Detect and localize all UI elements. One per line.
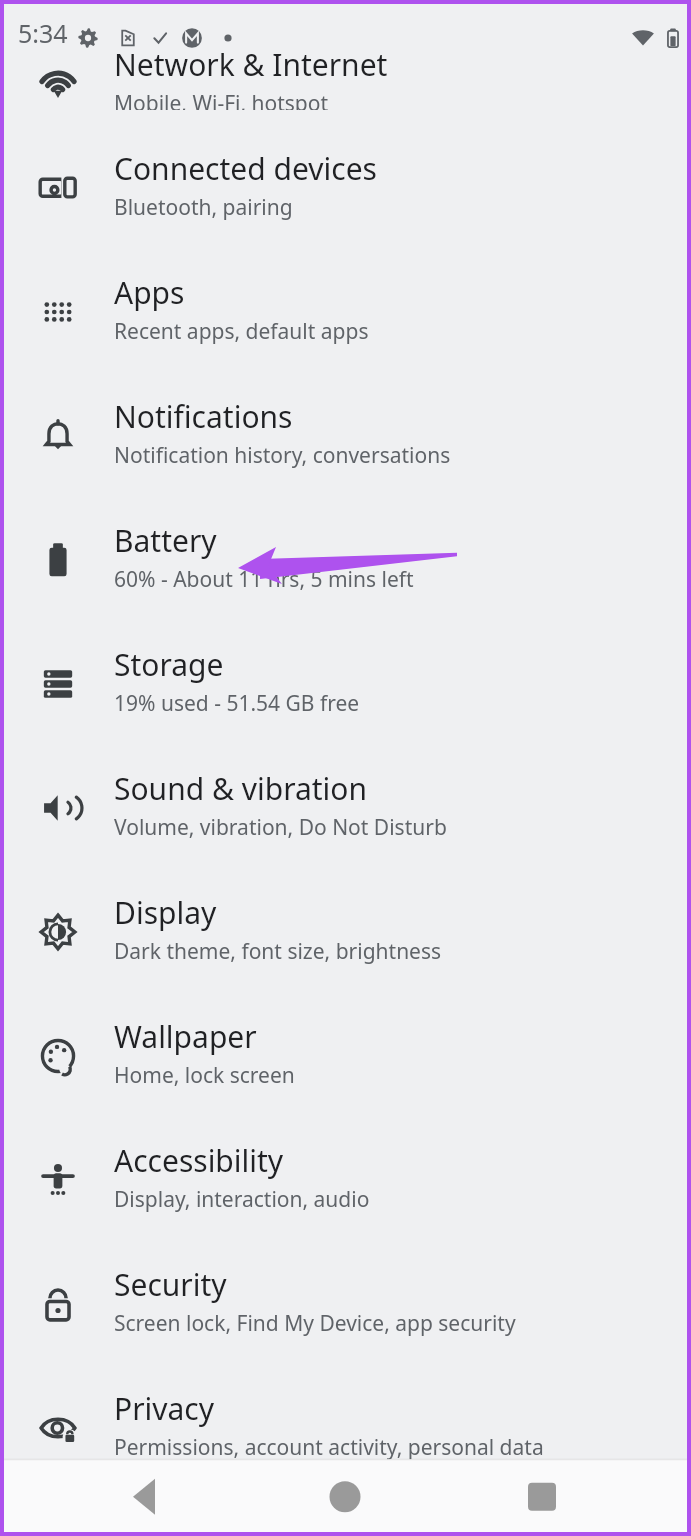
button[interactable]: Notifications [0, 374, 691, 498]
staticText: Notification history, conversations [114, 441, 451, 470]
staticText: Storage [114, 644, 224, 685]
staticText: Connected devices [114, 148, 377, 189]
staticText: Security [114, 1264, 227, 1305]
staticText: Battery [114, 520, 217, 561]
staticText: Bluetooth, pairing [114, 193, 293, 222]
staticText: Home, lock screen [114, 1061, 295, 1090]
staticText: Display [114, 892, 217, 933]
button[interactable]: Home [310, 1459, 380, 1536]
staticText: Sound & vibration [114, 768, 368, 809]
staticText: 60% - About 11 hrs, 5 mins left [114, 565, 414, 594]
staticText: Apps [114, 272, 185, 313]
staticText: Privacy [114, 1388, 215, 1429]
staticText: 19% used - 51.54 GB free [114, 689, 360, 718]
staticText: Recent apps, default apps [114, 317, 369, 346]
button[interactable]: Storage [0, 622, 691, 746]
button[interactable]: Accessibility [0, 1118, 691, 1242]
staticText: Permissions, account activity, personal … [114, 1433, 544, 1462]
staticText: Screen lock, Find My Device, app securit… [114, 1309, 516, 1338]
button[interactable]: Battery [0, 498, 691, 622]
staticText: Network & Internet [114, 44, 388, 85]
staticText: Dark theme, font size, brightness [114, 937, 442, 966]
button[interactable]: Display [0, 870, 691, 994]
button[interactable]: Sound & vibration [0, 746, 691, 870]
button[interactable]: Connected devices [0, 126, 691, 250]
button[interactable]: Network & Internet [0, 60, 691, 126]
staticText: Notifications [114, 396, 293, 437]
staticText: Accessibility [114, 1140, 284, 1181]
button[interactable]: Back [110, 1459, 180, 1536]
button[interactable]: Privacy [0, 1366, 691, 1490]
staticText: Mobile, Wi-Fi, hotspot [114, 89, 329, 110]
staticText: Wallpaper [114, 1016, 257, 1057]
button[interactable]: Security [0, 1242, 691, 1366]
staticText: Display, interaction, audio [114, 1185, 370, 1214]
staticText: 5:34 [18, 16, 68, 50]
button[interactable]: Apps [0, 250, 691, 374]
staticText: Volume, vibration, Do Not Disturb [114, 813, 447, 842]
button[interactable]: Wallpaper [0, 994, 691, 1118]
button[interactable]: Recent apps [507, 1459, 577, 1536]
